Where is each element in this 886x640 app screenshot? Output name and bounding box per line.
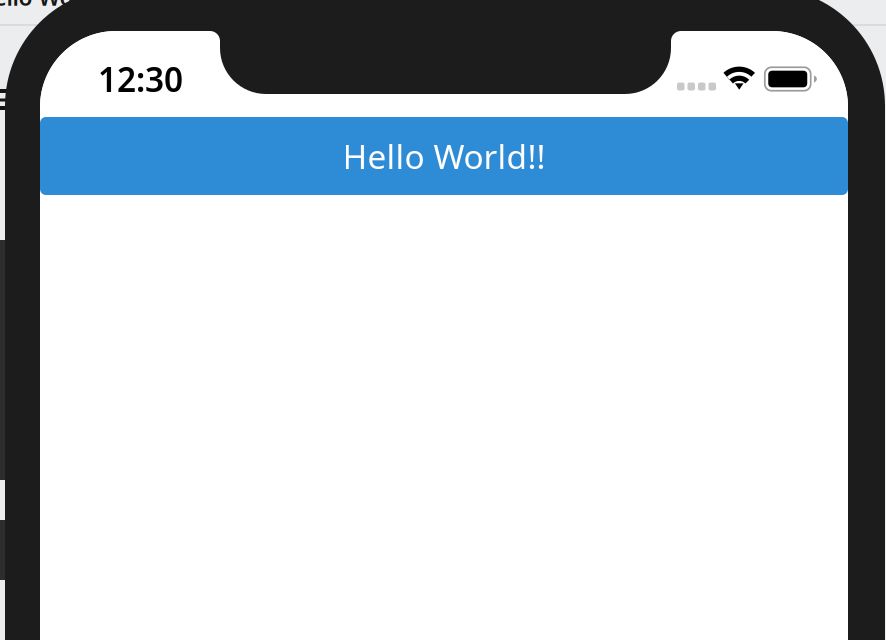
- staticText: Hello World!!: [342, 134, 545, 178]
- staticText: 12:30: [98, 57, 183, 101]
- staticText: Hello World: [0, 0, 103, 12]
